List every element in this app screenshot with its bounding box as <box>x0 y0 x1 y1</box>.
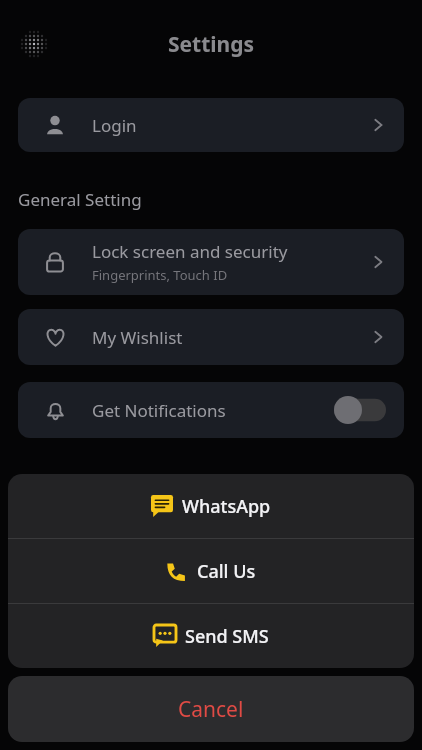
staticText: General Setting <box>18 188 142 211</box>
other: Lock <box>18 250 92 274</box>
staticText: Lock screen and security <box>92 240 288 263</box>
button[interactable]: Call Us <box>8 539 414 603</box>
button[interactable]: Cancel <box>8 676 414 742</box>
button[interactable]: WhatsApp <box>8 474 414 538</box>
staticText: Call Us <box>197 559 256 584</box>
staticText: Get Notifications <box>92 399 226 422</box>
staticText: Fingerprints, Touch ID <box>92 266 228 284</box>
button[interactable]: Wishlist <box>18 309 404 365</box>
other: Notifications <box>18 399 92 422</box>
staticText: Cancel <box>178 695 244 724</box>
button[interactable]: Menu <box>14 24 54 64</box>
button[interactable]: Lock <box>18 229 404 295</box>
button[interactable]: Notifications <box>18 382 404 438</box>
staticText: Send SMS <box>185 624 269 649</box>
staticText: WhatsApp <box>182 494 271 519</box>
staticText: Login <box>92 114 137 137</box>
staticText: My Wishlist <box>92 326 183 349</box>
button[interactable]: Account <box>18 98 404 152</box>
other: Account <box>18 114 92 136</box>
button[interactable]: Send SMS <box>8 604 414 668</box>
other: Wishlist <box>18 326 92 349</box>
staticText: Settings <box>168 30 255 59</box>
